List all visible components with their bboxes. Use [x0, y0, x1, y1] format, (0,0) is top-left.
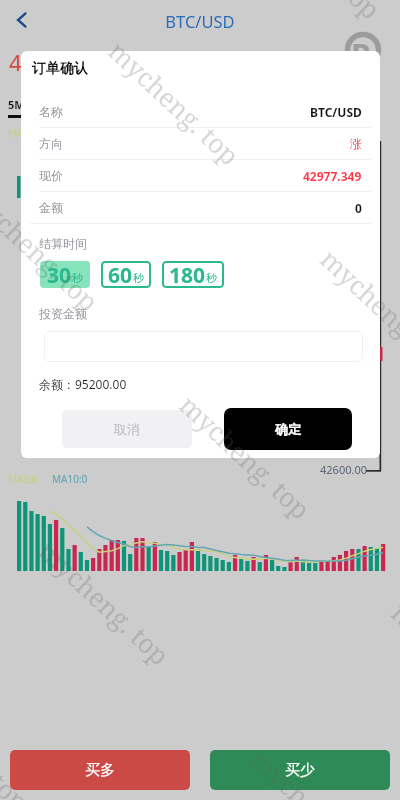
- button[interactable]: 30: [40, 261, 90, 288]
- staticText: 秒: [72, 271, 83, 285]
- staticText: 名称: [39, 104, 63, 119]
- staticText: 买少: [285, 761, 315, 780]
- staticText: 42977.349: [9, 47, 116, 77]
- staticText: BTC/USD: [165, 10, 235, 32]
- staticText: 秒: [206, 271, 217, 285]
- staticText: R: [351, 33, 372, 75]
- staticText: 结算时间: [39, 236, 87, 251]
- staticText: 确定: [275, 421, 301, 437]
- staticText: 取消: [114, 421, 140, 437]
- staticText: 秒: [133, 271, 144, 285]
- staticText: MA10:0: [52, 472, 88, 486]
- staticText: 方向: [39, 136, 63, 151]
- staticText: 0: [355, 200, 362, 216]
- button[interactable]: 买多: [10, 750, 190, 790]
- staticText: 投资金额: [39, 306, 87, 321]
- staticText: 涨: [350, 136, 362, 151]
- button[interactable]: 取消: [62, 410, 192, 448]
- staticText: 余额：95200.00: [39, 376, 127, 392]
- staticText: MA5:0: [8, 126, 38, 140]
- staticText: 现价: [39, 168, 63, 183]
- staticText: 42600.00: [320, 462, 367, 477]
- staticText: 买多: [85, 761, 115, 780]
- staticText: 5M: [8, 97, 25, 112]
- staticText: 金额: [39, 200, 63, 215]
- staticText: BTC/USD: [310, 104, 362, 120]
- staticText: 订单确认: [32, 60, 88, 78]
- button[interactable]: 确定: [224, 408, 352, 450]
- staticText: MA5:0: [8, 472, 38, 486]
- button[interactable]: 买少: [210, 750, 390, 790]
- staticText: 60: [108, 261, 133, 288]
- button[interactable]: [44, 331, 363, 362]
- staticText: 42977.349: [303, 168, 362, 184]
- staticText: 30: [47, 261, 72, 288]
- button[interactable]: 180: [162, 261, 224, 288]
- button[interactable]: 60: [101, 261, 151, 288]
- staticText: 180: [169, 261, 206, 288]
- button[interactable]: Back: [2, 0, 42, 40]
